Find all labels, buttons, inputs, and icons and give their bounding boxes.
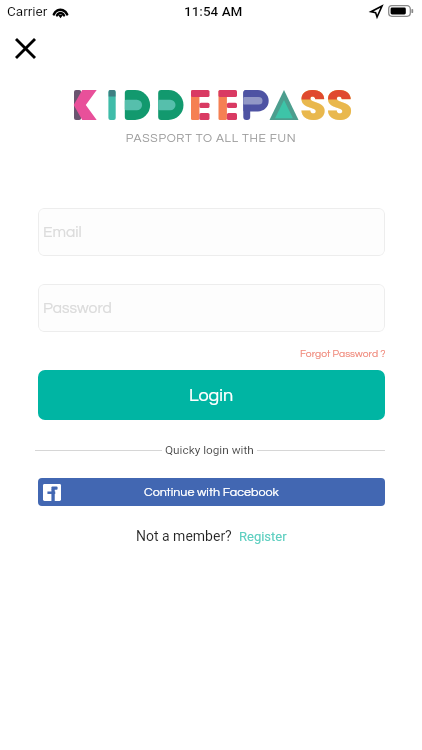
button[interactable]: Close xyxy=(5,28,46,69)
button[interactable]: Login xyxy=(38,370,385,420)
staticText: Continue with Facebook xyxy=(144,486,279,499)
staticText: Login xyxy=(189,386,234,405)
staticText: 11:54 AM xyxy=(184,3,243,19)
staticText: Carrier xyxy=(7,3,48,19)
button[interactable]: Password xyxy=(38,284,385,332)
staticText: Not a member? xyxy=(136,528,232,544)
staticText: Password xyxy=(43,300,112,316)
staticText: Email xyxy=(43,224,82,240)
button[interactable]: Email xyxy=(38,208,385,256)
staticText: Quicky login with xyxy=(165,443,254,457)
button[interactable]: Forgot Password ? xyxy=(297,346,389,363)
button[interactable]: Continue with Facebook xyxy=(38,478,385,506)
staticText: PASSPORT TO ALL THE FUN xyxy=(0,132,422,144)
button[interactable]: Register xyxy=(239,529,287,544)
